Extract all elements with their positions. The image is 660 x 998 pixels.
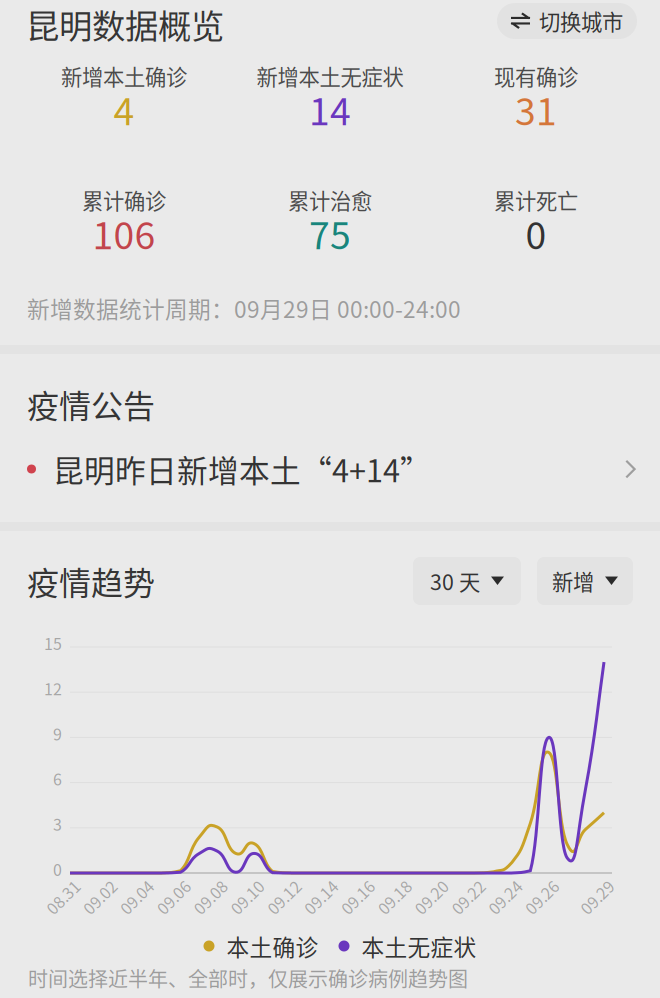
staticText: 31 <box>515 82 557 136</box>
staticText: 09.22 <box>448 885 488 909</box>
staticText: 09.04 <box>117 885 157 909</box>
staticText: 09.24 <box>485 885 525 909</box>
staticText: 4 <box>113 82 134 136</box>
button[interactable]: 昆明昨日新增本土“4+14” <box>0 449 660 489</box>
staticText: 09.02 <box>80 885 120 909</box>
staticText: 106 <box>92 206 155 260</box>
staticText: 30 天 <box>430 566 480 596</box>
staticText: 09.14 <box>301 885 341 909</box>
staticText: 09.16 <box>338 885 378 909</box>
staticText: 75 <box>309 206 351 260</box>
staticText: 12 <box>44 677 62 700</box>
staticText: 累计确诊 <box>82 185 166 215</box>
staticText: 0 <box>53 857 62 881</box>
staticText: 现有确诊 <box>494 61 578 91</box>
button[interactable]: 30 天 <box>413 557 521 605</box>
staticText: 6 <box>53 767 62 790</box>
staticText: 09.12 <box>264 885 304 909</box>
staticText: 09.10 <box>227 885 267 909</box>
staticText: 新增本土确诊 <box>61 61 187 91</box>
staticText: 昆明昨日新增本土“4+14” <box>53 447 431 491</box>
button[interactable]: 切换城市 <box>497 6 637 42</box>
staticText: 14 <box>309 82 351 136</box>
staticText: 09.18 <box>374 885 414 909</box>
staticText: 昆明数据概览 <box>26 0 224 48</box>
staticText: 疫情公告 <box>27 381 155 427</box>
button[interactable]: 新增 <box>537 557 633 605</box>
staticText: 0 <box>525 206 546 260</box>
staticText: 3 <box>53 812 62 835</box>
staticText: 累计死亡 <box>494 185 578 215</box>
staticText: 09.20 <box>411 885 451 909</box>
staticText: 09.06 <box>153 885 193 909</box>
staticText: 切换城市 <box>539 6 623 36</box>
staticText: 09.29 <box>577 885 617 909</box>
staticText: 新增数据统计周期：09月29日 00:00-24:00 <box>27 292 461 324</box>
staticText: 9 <box>53 722 62 745</box>
staticText: 时间选择近半年、全部时，仅展示确诊病例趋势图 <box>28 963 468 992</box>
staticText: 累计治愈 <box>288 185 372 215</box>
staticText: 疫情趋势 <box>27 558 155 604</box>
staticText: 本土确诊 <box>226 930 318 962</box>
staticText: 新增本土无症状 <box>256 61 403 91</box>
staticText: 本土无症状 <box>361 930 476 962</box>
staticText: 15 <box>44 631 62 655</box>
staticText: 09.26 <box>522 885 562 909</box>
staticText: 08.31 <box>43 885 83 909</box>
staticText: 新增 <box>552 566 594 596</box>
staticText: 09.08 <box>190 885 230 909</box>
